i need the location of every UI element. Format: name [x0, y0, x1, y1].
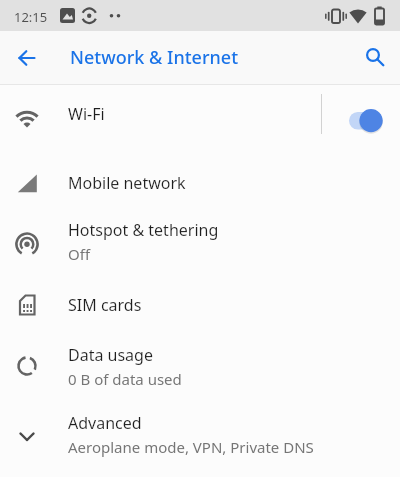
button[interactable]: Mobile network [0, 155, 400, 211]
staticText: Mobile network [68, 172, 186, 194]
button[interactable]: SIM cards [0, 277, 400, 333]
staticText: Wi-Fi [68, 103, 105, 125]
staticText: 12:15 [14, 8, 48, 26]
button[interactable] [350, 31, 400, 84]
staticText: Hotspot & tethering [68, 219, 219, 241]
staticText: Network & Internet [70, 45, 239, 70]
button[interactable] [0, 31, 53, 84]
staticText: SIM cards [68, 294, 142, 316]
button[interactable]: Wi-Fi [0, 86, 400, 142]
staticText: Off [68, 244, 91, 264]
button[interactable]: Advanced [0, 395, 400, 474]
button[interactable]: Hotspot & tethering [0, 205, 400, 277]
staticText: Advanced [68, 412, 142, 434]
staticText: Data usage [68, 344, 153, 366]
staticText: 0 B of data used [68, 369, 182, 389]
staticText: Aeroplane mode, VPN, Private DNS [68, 437, 314, 457]
button[interactable]: Data usage [0, 330, 400, 402]
